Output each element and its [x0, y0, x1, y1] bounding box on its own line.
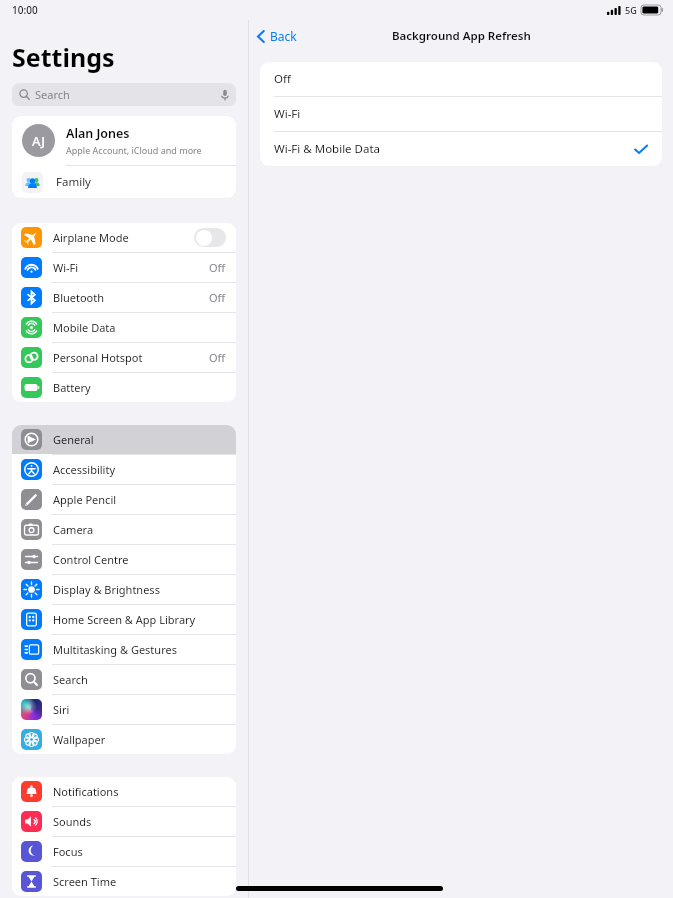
button[interactable]: Control Centre: [12, 545, 236, 574]
staticText: Control Centre: [53, 552, 129, 567]
staticText: Wi-Fi: [53, 260, 79, 275]
button[interactable]: AJ: [12, 116, 236, 165]
staticText: Alan Jones: [66, 125, 130, 142]
staticText: 5G: [625, 4, 637, 16]
staticText: Wi-Fi & Mobile Data: [274, 141, 381, 157]
staticText: Camera: [53, 522, 94, 537]
staticText: Back: [270, 28, 297, 44]
button[interactable]: Airplane Mode toggle: [194, 228, 226, 247]
button[interactable]: Siri: [12, 695, 236, 724]
button[interactable]: Bluetooth: [12, 283, 236, 312]
button[interactable]: Wallpaper: [12, 725, 236, 754]
staticText: AJ: [32, 132, 45, 150]
button[interactable]: Mobile Data: [12, 313, 236, 342]
button[interactable]: Battery: [12, 373, 236, 402]
button[interactable]: Notifications: [12, 777, 236, 806]
button[interactable]: Back: [249, 25, 305, 47]
button[interactable]: Accessibility: [12, 455, 236, 484]
button[interactable]: Search: [12, 665, 236, 694]
staticText: Search: [35, 87, 70, 102]
staticText: Bluetooth: [53, 290, 105, 305]
staticText: Wi-Fi: [274, 106, 301, 122]
button[interactable]: Wi-Fi: [12, 253, 236, 282]
button[interactable]: Family: [12, 166, 236, 198]
button[interactable]: Off: [260, 62, 662, 96]
staticText: Screen Time: [53, 874, 117, 889]
button[interactable]: Personal Hotspot: [12, 343, 236, 372]
staticText: Off: [209, 260, 226, 275]
staticText: Display & Brightness: [53, 582, 160, 597]
staticText: Apple Account, iCloud and more: [66, 144, 202, 156]
staticText: Airplane Mode: [53, 230, 129, 245]
staticText: Off: [274, 71, 291, 87]
staticText: Background App Refresh: [392, 28, 531, 44]
button[interactable]: General: [12, 425, 236, 454]
button[interactable]: Wi-Fi: [260, 97, 662, 131]
staticText: 10:00: [12, 3, 38, 17]
staticText: Accessibility: [53, 462, 116, 477]
button[interactable]: Airplane Mode: [12, 223, 236, 252]
button[interactable]: Sounds: [12, 807, 236, 836]
staticText: Off: [209, 290, 226, 305]
staticText: Wallpaper: [53, 732, 106, 747]
staticText: Family: [56, 174, 91, 190]
staticText: Focus: [53, 844, 83, 859]
staticText: Notifications: [53, 784, 119, 799]
staticText: Battery: [53, 380, 91, 395]
button[interactable]: Home Screen & App Library: [12, 605, 236, 634]
staticText: Settings: [12, 40, 115, 74]
staticText: Apple Pencil: [53, 492, 117, 507]
button[interactable]: Multitasking & Gestures: [12, 635, 236, 664]
button[interactable]: Camera: [12, 515, 236, 544]
staticText: Off: [209, 350, 226, 365]
button[interactable]: Display & Brightness: [12, 575, 236, 604]
staticText: Personal Hotspot: [53, 350, 143, 365]
button[interactable]: Apple Pencil: [12, 485, 236, 514]
button[interactable]: Search: [12, 83, 236, 106]
staticText: General: [53, 432, 94, 447]
staticText: Mobile Data: [53, 320, 116, 335]
staticText: Home Screen & App Library: [53, 612, 196, 627]
staticText: Sounds: [53, 814, 92, 829]
button[interactable]: Wi-Fi & Mobile Data: [260, 132, 662, 166]
button[interactable]: Screen Time: [12, 867, 236, 896]
staticText: Siri: [53, 702, 70, 717]
staticText: Search: [53, 672, 88, 687]
button[interactable]: Focus: [12, 837, 236, 866]
staticText: Multitasking & Gestures: [53, 642, 177, 657]
